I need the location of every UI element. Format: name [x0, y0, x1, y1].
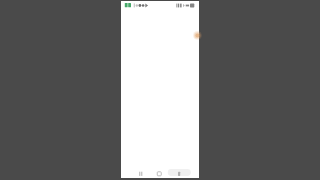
- button[interactable]: Home: [153, 169, 166, 178]
- button[interactable]: Back: [134, 169, 147, 178]
- button[interactable]: Compose: [193, 31, 202, 40]
- button[interactable]: Recent apps: [168, 169, 191, 178]
